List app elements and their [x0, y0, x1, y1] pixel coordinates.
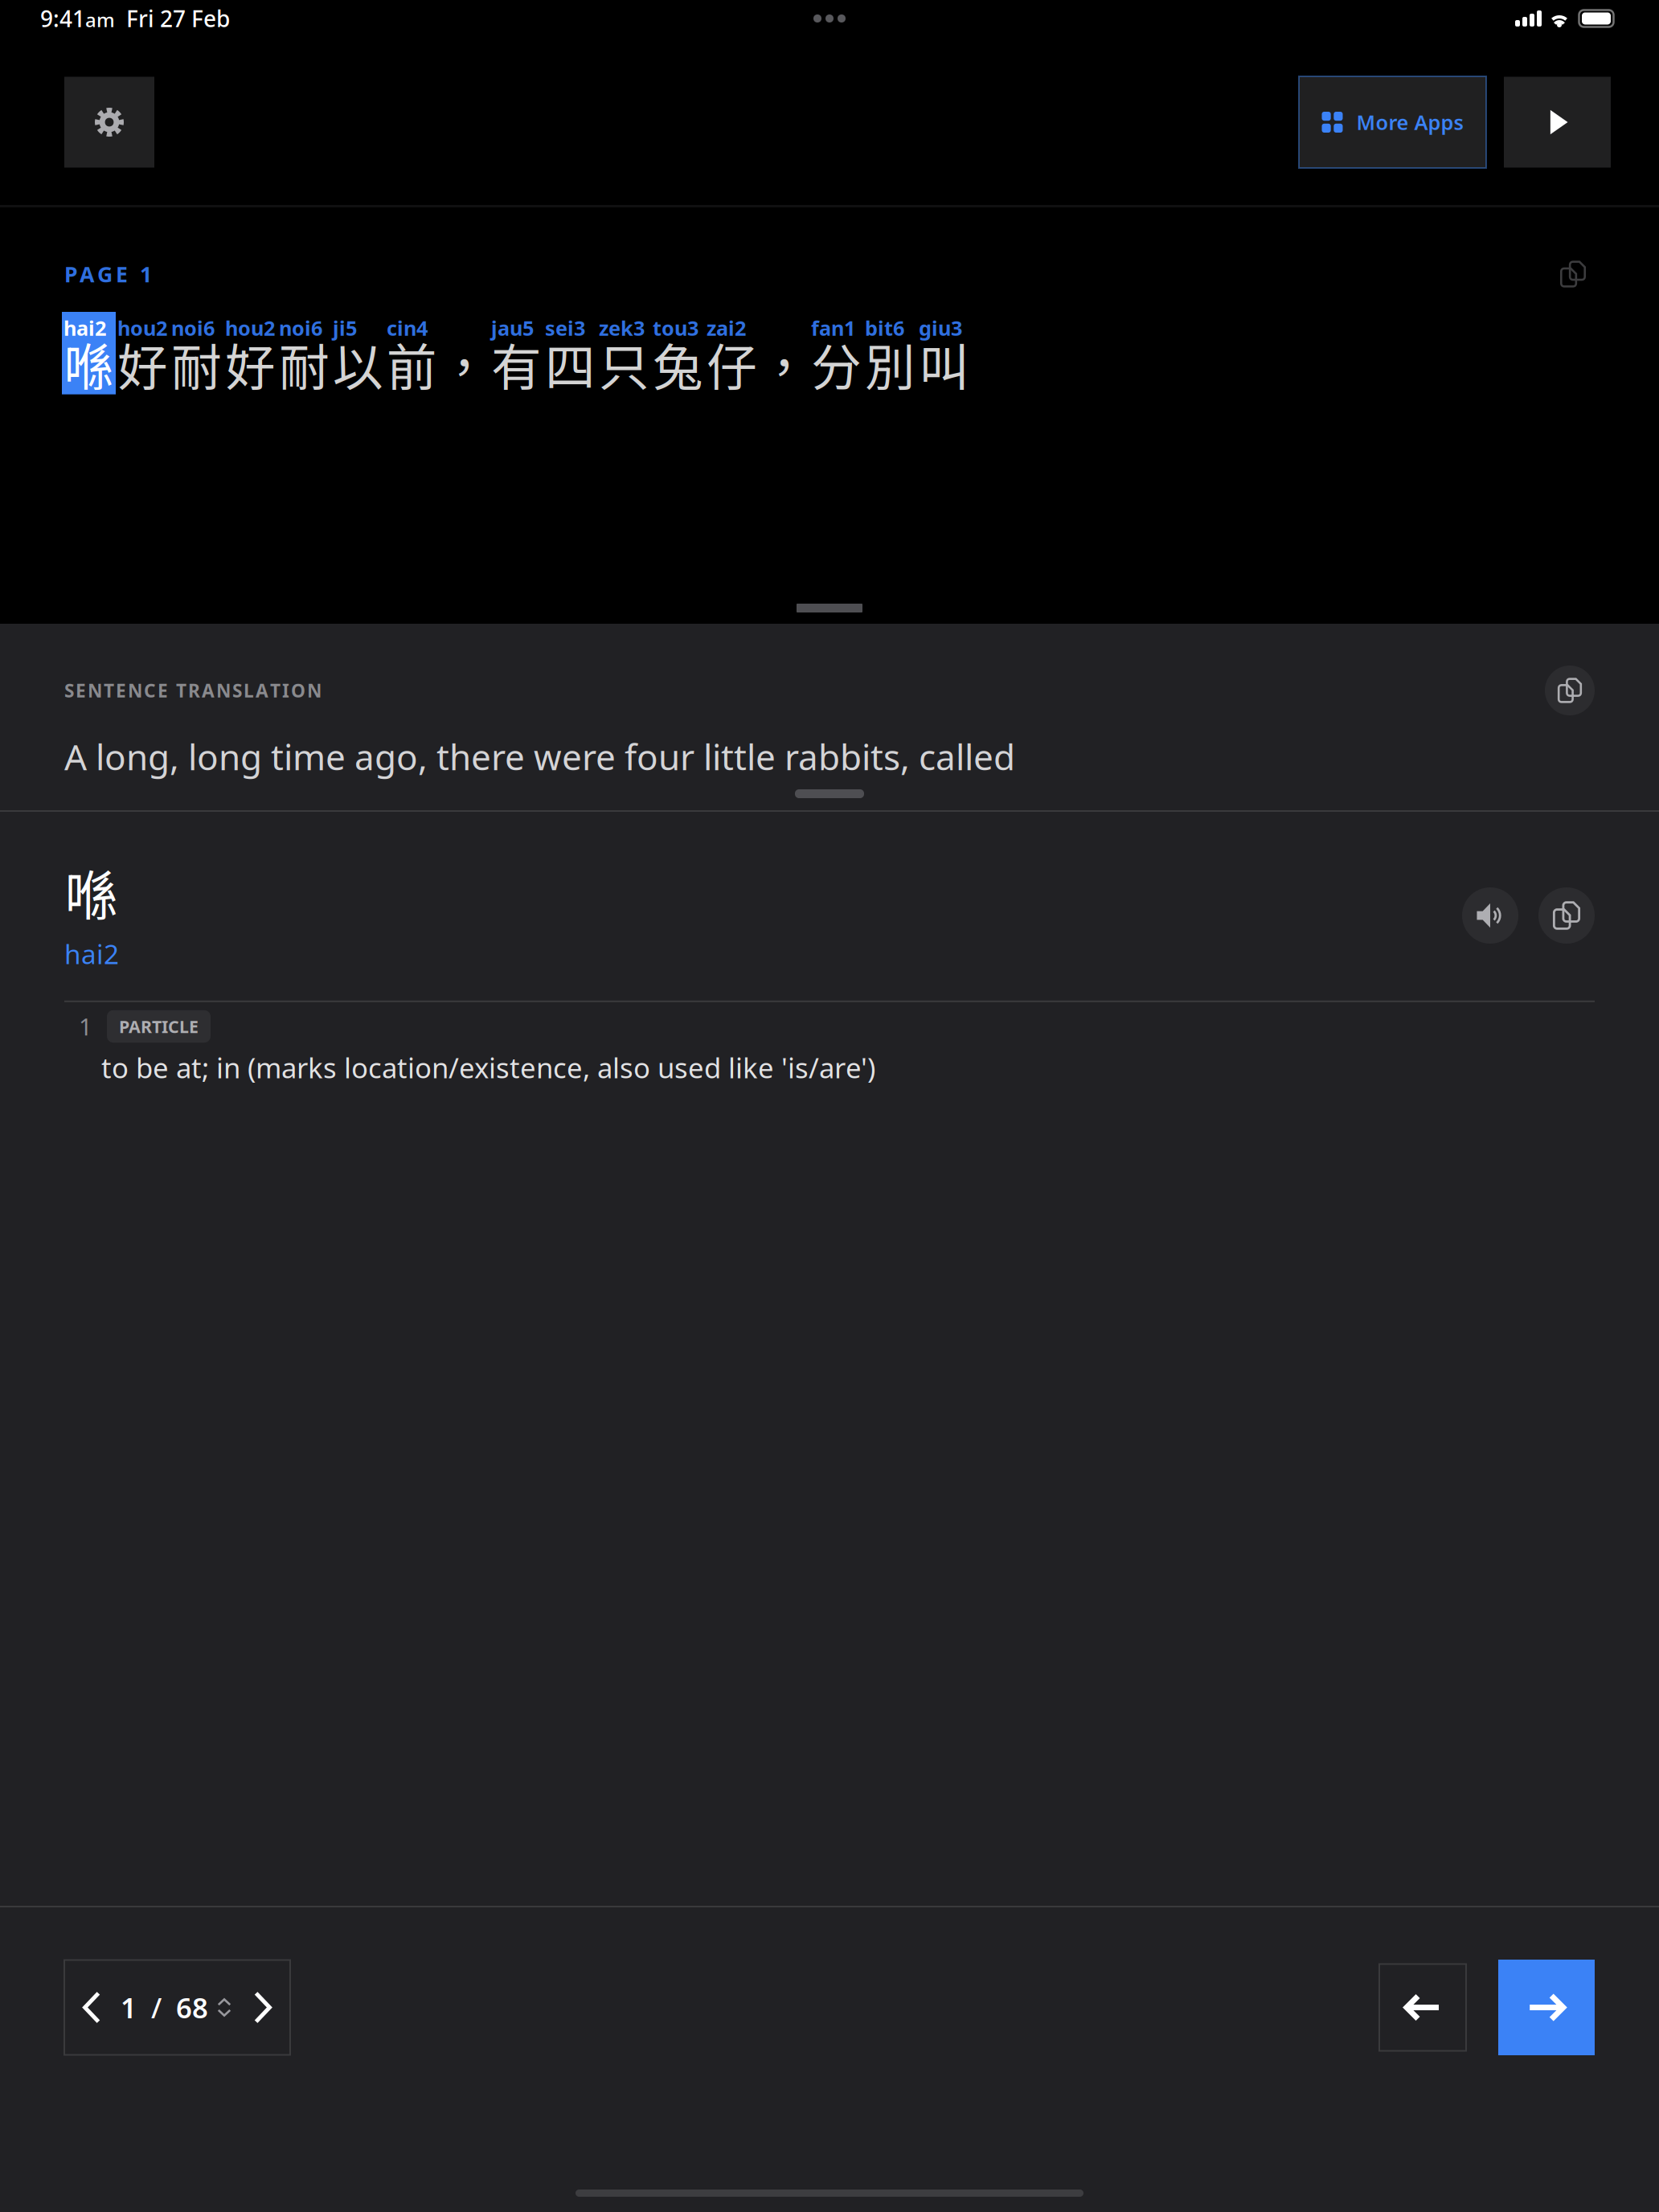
staticText: ， [759, 327, 809, 400]
staticText: 9:41 [40, 4, 85, 33]
staticText: hai2 [64, 936, 119, 972]
staticText: More Apps [1356, 109, 1463, 136]
button[interactable]: Play pronunciation [1462, 887, 1518, 944]
staticText: jau5 [491, 314, 534, 341]
staticText: hou2 [117, 314, 167, 341]
button[interactable]: Copy translation [1545, 666, 1595, 715]
staticText: giu3 [919, 314, 962, 341]
staticText: 喺 [63, 327, 114, 400]
staticText: A long, long time ago, there were four l… [64, 733, 1015, 780]
staticText: PARTICLE [119, 1015, 199, 1038]
staticText: am [85, 7, 115, 33]
staticText: bit6 [865, 314, 904, 341]
staticText: 喺 [64, 854, 118, 931]
staticText: 有 [491, 327, 542, 400]
staticText: tou3 [653, 314, 698, 341]
staticText: 耐 [279, 327, 330, 400]
staticText: S E N T E N C E T R A N S L A T I O N [64, 678, 322, 703]
staticText: Fri 27 Feb [115, 4, 230, 33]
staticText: sei3 [545, 314, 585, 341]
button[interactable]: Back [1379, 1964, 1466, 2051]
staticText: noi6 [171, 314, 215, 341]
button[interactable]: Previous page [63, 1961, 121, 2054]
staticText: PAGE 1 [64, 260, 152, 288]
button[interactable]: Play [1504, 77, 1611, 168]
button[interactable]: Next page [234, 1961, 292, 2054]
button[interactable]: Forward [1498, 1960, 1595, 2055]
staticText: 別 [865, 327, 916, 400]
staticText: 四 [545, 327, 596, 400]
staticText: noi6 [279, 314, 322, 341]
staticText: 分 [811, 327, 862, 400]
staticText: hou2 [225, 314, 275, 341]
staticText: to be at; in (marks location/existence, … [101, 1049, 875, 1086]
staticText: 以 [333, 327, 383, 400]
button[interactable]: Settings [64, 77, 154, 168]
staticText: zai2 [707, 314, 746, 341]
staticText: 1 [121, 1989, 137, 2026]
staticText: fan1 [811, 314, 855, 341]
staticText: hai2 [63, 314, 106, 341]
staticText: 叫 [919, 327, 969, 400]
staticText: 兔 [653, 327, 703, 400]
staticText: 好 [117, 327, 168, 400]
staticText: 只 [599, 327, 649, 400]
staticText: ji5 [333, 314, 357, 341]
staticText: ， [439, 327, 490, 400]
button[interactable]: More Apps [1299, 76, 1486, 168]
staticText: 仔 [707, 327, 757, 400]
button[interactable]: Copy word [1538, 887, 1595, 944]
staticText: 好 [225, 327, 276, 400]
staticText: zek3 [599, 314, 645, 341]
staticText: cin4 [387, 314, 428, 341]
staticText: / [137, 1989, 176, 2026]
staticText: 耐 [171, 327, 222, 400]
staticText: 68 [176, 1989, 208, 2026]
button[interactable]: Copy sentence [1551, 252, 1595, 296]
staticText: 前 [387, 327, 437, 400]
staticText: 1 [79, 1011, 92, 1042]
